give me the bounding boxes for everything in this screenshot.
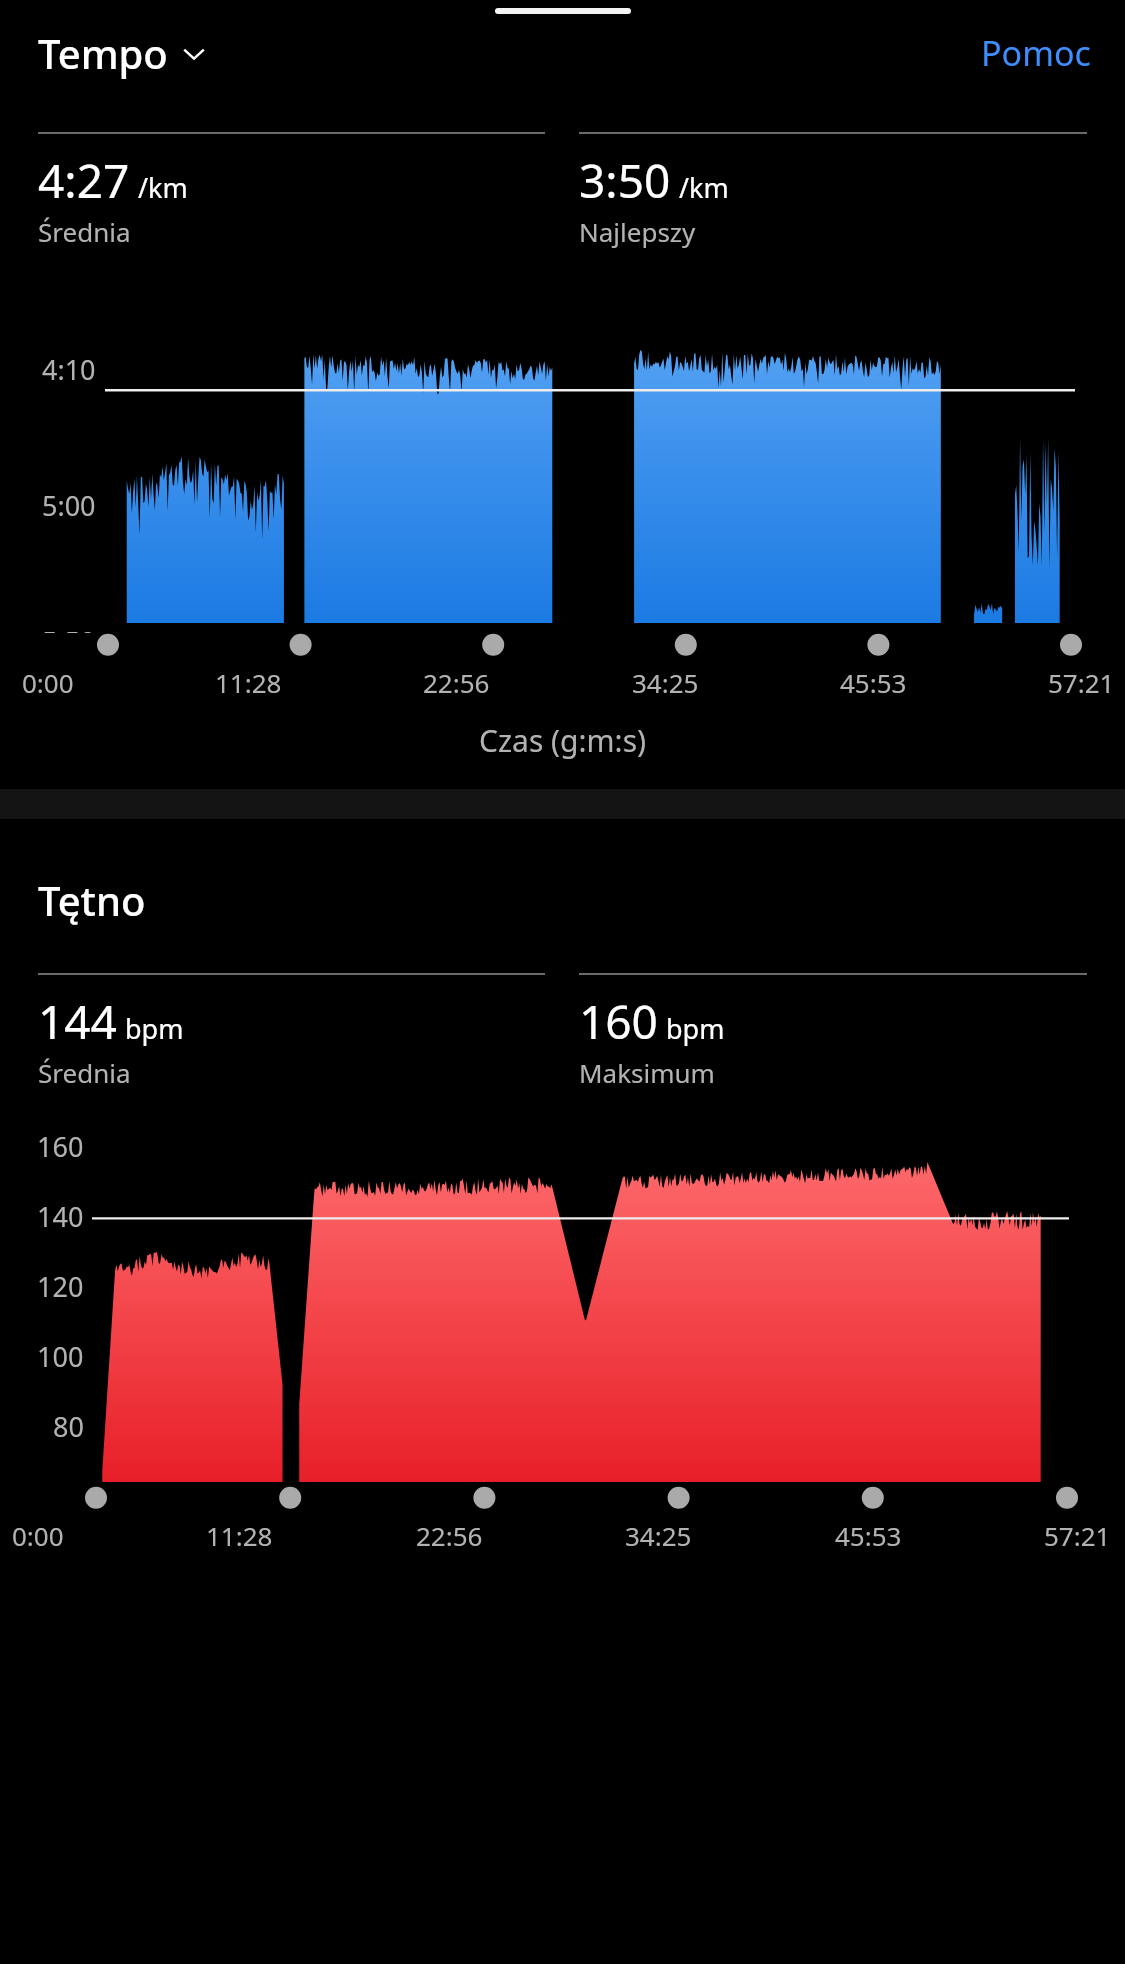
staticText: 0:00 xyxy=(12,1518,64,1553)
staticText: 80 xyxy=(53,1408,84,1445)
staticText: 34:25 xyxy=(625,1518,692,1553)
staticText: 57:21 xyxy=(1044,1518,1111,1553)
other: Change metric xyxy=(180,39,208,67)
staticText: 11:28 xyxy=(215,665,282,700)
staticText: 160 xyxy=(37,1128,84,1165)
staticText: 22:56 xyxy=(423,665,490,700)
staticText: Tempo xyxy=(38,26,168,80)
staticText: 45:53 xyxy=(835,1518,902,1553)
button[interactable]: 3:50 xyxy=(579,132,1087,249)
staticText: 22:56 xyxy=(416,1518,483,1553)
staticText: 100 xyxy=(37,1338,84,1375)
staticText: 140 xyxy=(37,1198,84,1235)
staticText: 5:50 xyxy=(42,623,96,633)
button[interactable]: 4:27 xyxy=(38,132,545,249)
staticText: Pomoc xyxy=(981,30,1091,76)
staticText: 4:10 xyxy=(42,351,96,388)
staticText: Czas (g:m:s) xyxy=(479,720,647,761)
staticText: Maksimum xyxy=(579,1055,715,1090)
staticText: 5:00 xyxy=(42,487,96,524)
staticText: 3:50 xyxy=(579,149,671,212)
staticText: /km xyxy=(138,169,188,206)
staticText: 45:53 xyxy=(840,665,907,700)
staticText: bpm xyxy=(125,1010,184,1047)
staticText: Najlepszy xyxy=(579,214,696,249)
staticText: Tętno xyxy=(38,873,146,927)
staticText: 144 xyxy=(38,990,117,1053)
button[interactable]: 144 xyxy=(38,973,545,1090)
button[interactable]: Tętno xyxy=(38,873,146,927)
staticText: 4:27 xyxy=(38,149,130,212)
staticText: 34:25 xyxy=(632,665,699,700)
staticText: 120 xyxy=(37,1268,84,1305)
button[interactable]: 160 xyxy=(579,973,1087,1090)
staticText: 160 xyxy=(579,990,658,1053)
staticText: Średnia xyxy=(38,214,131,249)
staticText: 11:28 xyxy=(206,1518,273,1553)
staticText: 57:21 xyxy=(1048,665,1115,700)
button[interactable]: Pomoc xyxy=(977,24,1095,82)
staticText: 0:00 xyxy=(22,665,74,700)
button[interactable]: Tempo xyxy=(38,22,208,84)
staticText: Średnia xyxy=(38,1055,131,1090)
staticText: bpm xyxy=(666,1010,725,1047)
staticText: /km xyxy=(679,169,729,206)
